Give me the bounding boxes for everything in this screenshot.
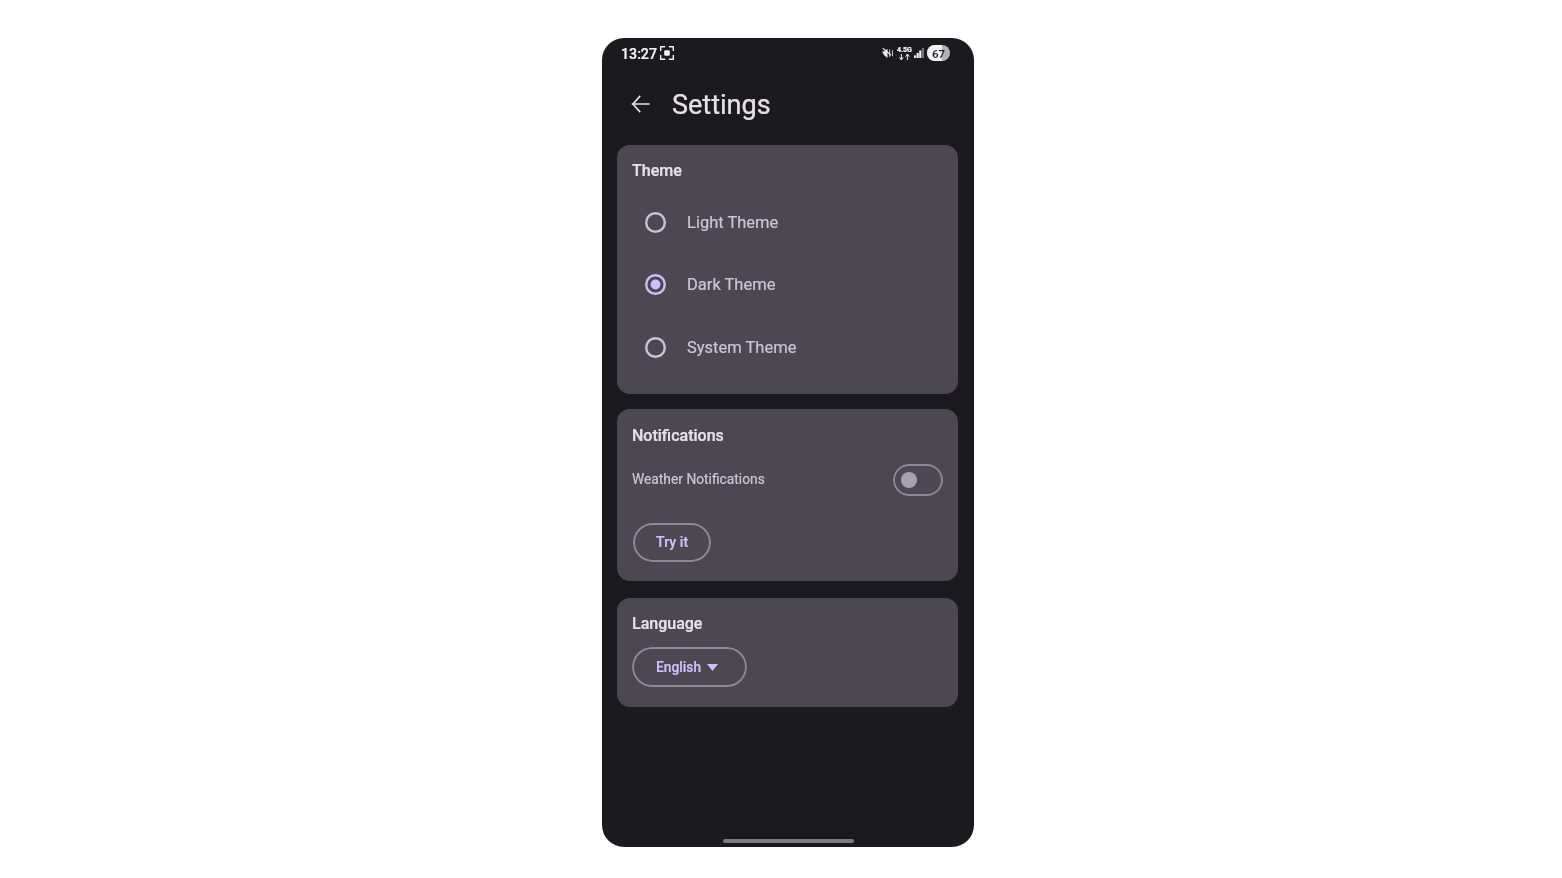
staticText: 13:27 [621, 46, 657, 63]
button[interactable]: Dark Theme [617, 260, 958, 308]
button[interactable]: English [632, 647, 747, 687]
staticText: Try it [656, 534, 689, 551]
button[interactable]: Back [622, 86, 658, 122]
staticText: System Theme [687, 338, 797, 357]
staticText: Language [632, 614, 703, 633]
button[interactable]: Light Theme [617, 198, 958, 246]
staticText: Theme [632, 161, 682, 180]
staticText: 67 [932, 47, 946, 60]
staticText: English [656, 659, 702, 675]
button[interactable]: Weather Notifications toggle [893, 464, 943, 496]
staticText: Dark Theme [687, 275, 776, 294]
staticText: Settings [672, 89, 771, 121]
staticText: Light Theme [687, 213, 779, 232]
button[interactable]: System Theme [617, 323, 958, 371]
staticText: 4.5G [897, 46, 912, 54]
button[interactable]: Try it [633, 523, 711, 562]
staticText: Notifications [632, 426, 724, 445]
staticText: Weather Notifications [632, 471, 765, 487]
